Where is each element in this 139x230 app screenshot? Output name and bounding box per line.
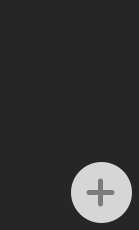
button[interactable]: Add — [71, 162, 132, 223]
